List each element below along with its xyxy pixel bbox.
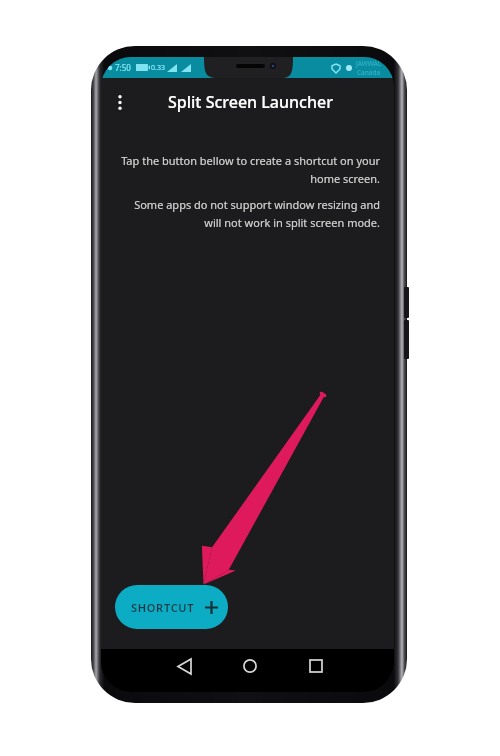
staticText: 7:50 (115, 62, 131, 73)
staticText: Some apps do not support window resizing… (115, 197, 380, 230)
staticText: JAWWAL (356, 59, 382, 68)
staticText: 0.33 (151, 63, 165, 73)
button[interactable]: Home (235, 651, 265, 681)
staticText: Tap the button bellow to create a shortc… (115, 153, 380, 186)
staticText: SHORTCUT (131, 600, 195, 615)
button[interactable]: Recents (301, 651, 331, 681)
button[interactable]: Back (169, 651, 199, 681)
button[interactable]: SHORTCUT (115, 585, 228, 629)
button[interactable]: More options (105, 82, 135, 112)
staticText: Split Screen Launcher (168, 91, 333, 113)
staticText: Canada (357, 68, 381, 77)
